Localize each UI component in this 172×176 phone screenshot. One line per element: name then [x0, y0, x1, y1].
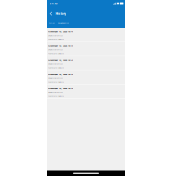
- staticText: Fabric Care: Delicate: [48, 52, 64, 55]
- staticText: History: [55, 11, 66, 16]
- staticText: Diagnostics: [58, 22, 69, 24]
- staticText: Fabric Care: Delicate: [48, 38, 64, 41]
- staticText: Single Cycle 18m32s: [48, 63, 63, 65]
- staticText: November 10, 2025 19:41: [48, 72, 73, 76]
- button[interactable]: Diagnostics: [58, 20, 71, 26]
- staticText: 9:41 AM: [50, 2, 58, 5]
- staticText: Single Cycle 18m32s: [48, 91, 63, 93]
- button[interactable]: November 10, 2025 19:41: [47, 85, 125, 99]
- button[interactable]: November 10, 2025 19:41: [47, 42, 125, 56]
- button[interactable]: Back: [49, 10, 52, 17]
- button[interactable]: November 10, 2025 19:41: [47, 56, 125, 71]
- button[interactable]: November 10, 2025 19:41: [47, 71, 125, 85]
- staticText: November 10, 2025 19:41: [48, 87, 73, 90]
- button[interactable]: November 10, 2025 19:41: [47, 28, 125, 42]
- staticText: Fabric Care: Delicate: [48, 81, 64, 83]
- button[interactable]: Cycles: [49, 20, 56, 26]
- staticText: Fabric Care: Delicate: [48, 66, 64, 69]
- staticText: Single Cycle 18m32s: [48, 34, 63, 37]
- staticText: Single Cycle 18m32s: [48, 48, 63, 51]
- staticText: Single Cycle 18m32s: [48, 77, 63, 79]
- staticText: November 10, 2025 19:41: [48, 58, 73, 61]
- staticText: Cycles: [49, 22, 55, 24]
- staticText: Fabric Care: Delicate: [48, 95, 64, 97]
- staticText: November 10, 2025 19:41: [48, 30, 73, 33]
- staticText: November 10, 2025 19:41: [48, 44, 73, 47]
